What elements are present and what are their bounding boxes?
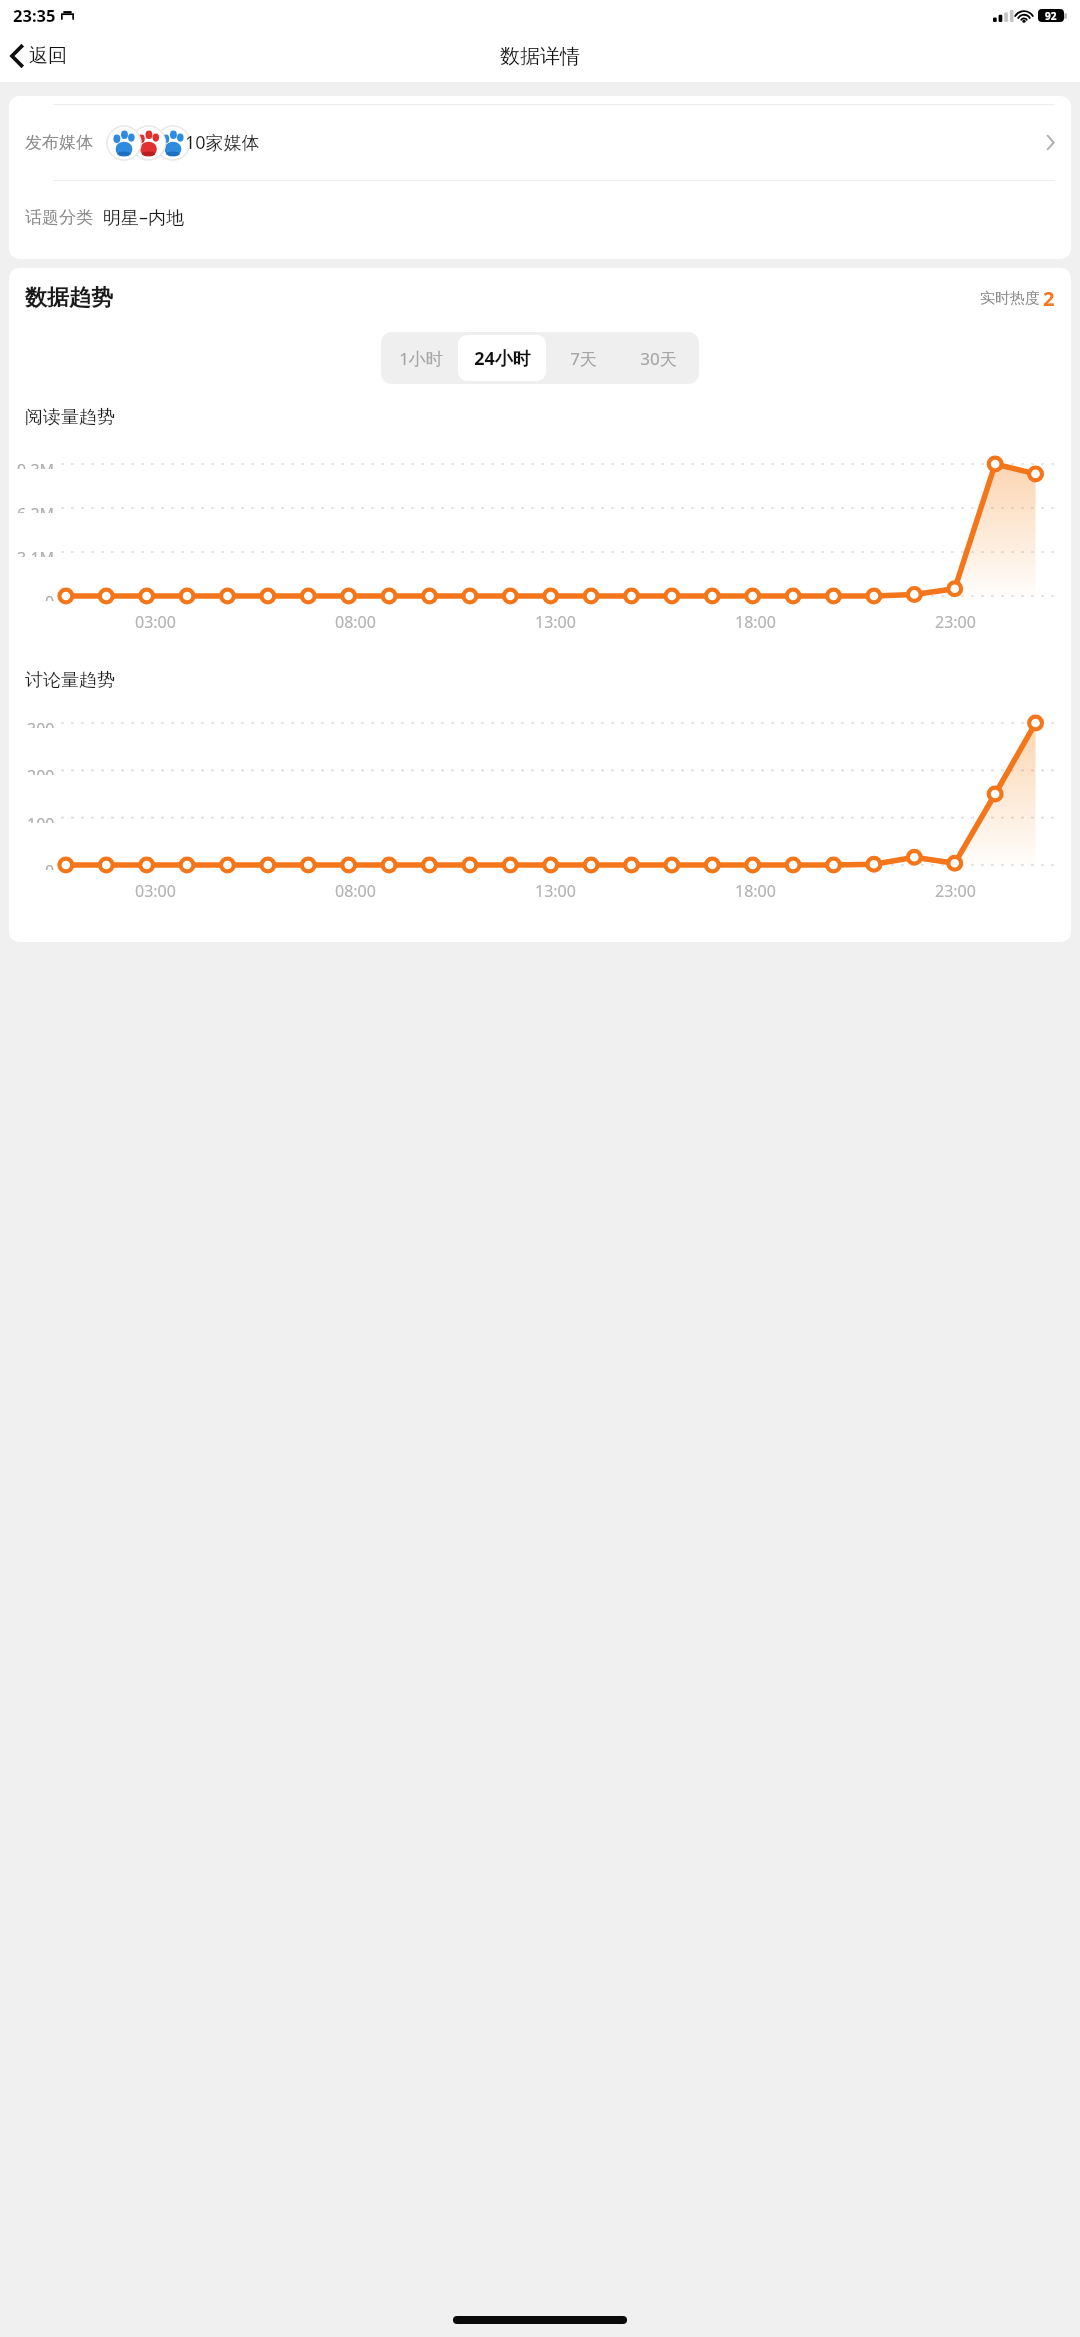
staticText: 0 xyxy=(45,860,55,870)
staticText: 0 xyxy=(45,591,55,601)
staticText: 30天 xyxy=(640,347,677,370)
staticText: 24小时 xyxy=(474,346,531,371)
staticText: 9.3M xyxy=(17,459,55,469)
staticText: 92 xyxy=(1045,9,1057,22)
staticText: 03:00 xyxy=(135,880,176,902)
staticText: 100 xyxy=(27,813,55,823)
staticText: 返回 xyxy=(29,44,67,68)
staticText: 6.2M xyxy=(17,503,55,513)
staticText: 300 xyxy=(27,718,55,728)
button[interactable]: 返回 xyxy=(0,30,79,82)
staticText: 数据趋势 xyxy=(25,284,113,312)
staticText: 23:00 xyxy=(935,880,976,902)
staticText: 23:00 xyxy=(935,611,976,633)
staticText: 1小时 xyxy=(399,347,443,370)
staticText: 数据详情 xyxy=(500,44,580,69)
button[interactable]: 话题分类 xyxy=(9,181,1071,253)
staticText: 实时热度 xyxy=(980,289,1040,308)
staticText: 18:00 xyxy=(735,880,776,902)
staticText: 10家媒体 xyxy=(185,130,260,155)
staticText: 18:00 xyxy=(735,611,776,633)
staticText: 200 xyxy=(27,765,55,775)
staticText: 讨论量趋势 xyxy=(25,669,115,692)
button[interactable]: 发布媒体 xyxy=(9,105,1071,180)
staticText: 明星–内地 xyxy=(103,205,184,230)
button[interactable]: 1小时 xyxy=(384,335,458,381)
staticText: 话题分类 xyxy=(25,207,93,228)
button[interactable]: 30天 xyxy=(621,335,696,381)
staticText: 阅读量趋势 xyxy=(25,406,115,429)
staticText: 23:35 xyxy=(13,4,56,26)
staticText: 08:00 xyxy=(335,611,376,633)
staticText: 7天 xyxy=(570,347,597,370)
staticText: 13:00 xyxy=(535,880,576,902)
staticText: 03:00 xyxy=(135,611,176,633)
staticText: 发布媒体 xyxy=(25,132,93,153)
staticText: 13:00 xyxy=(535,611,576,633)
staticText: 08:00 xyxy=(335,880,376,902)
button[interactable]: 24小时 xyxy=(458,335,546,381)
button[interactable]: 7天 xyxy=(546,335,621,381)
staticText: 2 xyxy=(1043,285,1055,312)
staticText: 3.1M xyxy=(17,547,55,557)
